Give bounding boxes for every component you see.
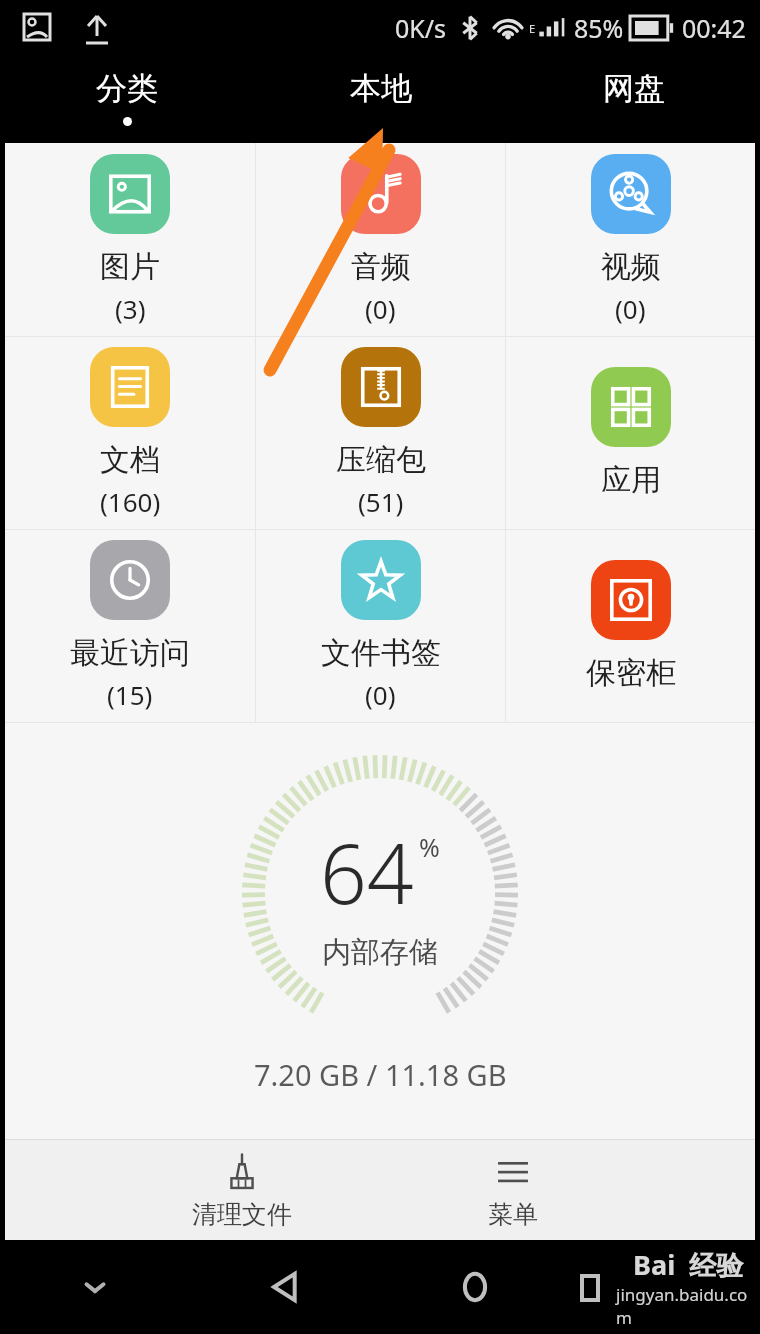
staticText: 视频 — [601, 248, 661, 286]
staticText: (160) — [100, 484, 161, 519]
staticText: (0) — [615, 291, 646, 326]
button[interactable]: 分类 — [0, 55, 254, 143]
button[interactable]: 音频 — [256, 143, 505, 336]
button[interactable]: 视频 — [506, 143, 755, 336]
staticText: 文档 — [100, 441, 160, 479]
button[interactable]: 本地 — [254, 55, 507, 143]
staticText: 应用 — [601, 461, 661, 499]
staticText: (0) — [365, 677, 396, 712]
staticText: 网盘 — [603, 69, 665, 108]
staticText: 菜单 — [488, 1199, 538, 1230]
staticText: 分类 — [96, 69, 158, 108]
staticText: jingyan.baidu.com — [616, 1283, 760, 1329]
button[interactable]: 清理文件 — [168, 1143, 316, 1238]
staticText: Bai 经验 — [633, 1246, 744, 1283]
staticText: 0K/s — [395, 11, 447, 45]
button[interactable]: 菜单 — [464, 1143, 562, 1238]
staticText: (0) — [365, 291, 396, 326]
staticText: % — [419, 830, 440, 864]
button[interactable]: 最近访问 — [5, 530, 255, 722]
staticText: 本地 — [350, 69, 412, 108]
staticText: 64 — [320, 816, 414, 928]
staticText: 清理文件 — [192, 1199, 292, 1230]
staticText: 7.20 GB / 11.18 GB — [254, 1055, 507, 1094]
staticText: 压缩包 — [336, 441, 426, 479]
staticText: 图片 — [100, 248, 160, 286]
staticText: 最近访问 — [70, 634, 190, 672]
staticText: 音频 — [351, 248, 411, 286]
button[interactable]: Back — [190, 1240, 380, 1334]
button[interactable]: Hide — [0, 1240, 190, 1334]
button[interactable]: 图片 — [5, 143, 255, 336]
button[interactable]: Home — [380, 1240, 570, 1334]
button[interactable]: 应用 — [506, 337, 755, 529]
button[interactable]: Recents — [570, 1240, 760, 1334]
staticText: E — [529, 21, 536, 36]
staticText: 保密柜 — [586, 654, 676, 692]
staticText: 内部存储 — [322, 934, 438, 971]
button[interactable]: 文件书签 — [256, 530, 505, 722]
staticText: (15) — [107, 677, 153, 712]
button[interactable]: 压缩包 — [256, 337, 505, 529]
staticText: 文件书签 — [321, 634, 441, 672]
staticText: 00:42 — [682, 11, 746, 45]
button[interactable]: 网盘 — [507, 55, 760, 143]
button[interactable]: 保密柜 — [506, 530, 755, 722]
staticText: (51) — [358, 484, 404, 519]
staticText: (3) — [115, 291, 146, 326]
staticText: 85% — [574, 11, 624, 45]
button[interactable]: 文档 — [5, 337, 255, 529]
